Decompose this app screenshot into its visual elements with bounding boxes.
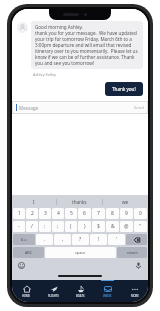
staticText: . (44, 236, 46, 243)
button[interactable]: ABC (13, 247, 44, 258)
staticText: , (62, 236, 64, 243)
button[interactable]: $ (92, 221, 105, 232)
staticText: " (139, 223, 142, 230)
button[interactable]: : (39, 221, 51, 232)
button[interactable]: 6 (78, 208, 91, 219)
staticText: ( (70, 223, 72, 230)
button[interactable]: ; (52, 221, 64, 232)
staticText: 5 (70, 210, 73, 217)
button[interactable]: Dictation (134, 261, 143, 270)
staticText: HOME (22, 294, 31, 298)
staticText: ) (84, 223, 86, 230)
staticText: - (18, 223, 20, 230)
button[interactable]: - (13, 221, 25, 232)
staticText: 6 (83, 210, 86, 217)
staticText: space (75, 250, 86, 255)
staticText: return (127, 250, 138, 255)
staticText: Thank you! (112, 86, 136, 92)
staticText: Message (19, 105, 134, 111)
staticText: ' (116, 236, 118, 243)
button[interactable]: 9 (120, 208, 133, 219)
button[interactable]: thanks (57, 195, 102, 208)
button[interactable]: Backspace (126, 234, 147, 245)
staticText: 9 (125, 210, 128, 217)
button[interactable]: #+= (13, 234, 35, 245)
button[interactable]: & (106, 221, 119, 232)
button[interactable]: 8 (106, 208, 119, 219)
staticText: FLIGHTS (48, 294, 59, 298)
button[interactable]: ! (90, 234, 107, 245)
button[interactable]: Emoji (17, 261, 26, 270)
staticText: ! (98, 236, 100, 243)
staticText: ABC (25, 250, 32, 255)
button[interactable]: 7 (92, 208, 105, 219)
staticText: Send (134, 105, 144, 111)
button[interactable]: Thank you! (105, 82, 143, 96)
staticText: / (31, 223, 33, 230)
button[interactable]: Message (12, 101, 148, 114)
button[interactable]: . (36, 234, 53, 245)
staticText: ? (79, 236, 82, 243)
staticText: $ (97, 223, 100, 230)
staticText: 8 (111, 210, 114, 217)
button[interactable]: FLIGHTS (40, 280, 67, 302)
staticText: Good morning Ashley, thank you for your … (35, 24, 139, 66)
staticText: 2 (31, 210, 34, 217)
staticText: 1 (18, 210, 21, 217)
staticText: I (33, 199, 35, 205)
button[interactable]: 4 (52, 208, 64, 219)
button[interactable]: 1 (13, 208, 25, 219)
staticText: : (44, 223, 46, 230)
button[interactable]: " (134, 221, 147, 232)
button[interactable]: ( (65, 221, 77, 232)
staticText: @ (124, 223, 129, 230)
staticText: ; (57, 223, 59, 230)
button[interactable]: space (45, 247, 116, 258)
button[interactable]: I (12, 195, 56, 208)
button[interactable]: INBOX (94, 280, 121, 302)
button[interactable]: we (103, 195, 148, 208)
staticText: BOATS (76, 294, 85, 298)
staticText: 3 (44, 210, 47, 217)
staticText: INBOX (103, 294, 112, 298)
staticText: #+= (21, 237, 28, 242)
staticText: we (122, 199, 129, 205)
staticText: thanks (72, 199, 87, 205)
button[interactable]: ? (72, 234, 89, 245)
button[interactable]: ' (108, 234, 125, 245)
button[interactable]: 5 (65, 208, 77, 219)
button[interactable]: @ (120, 221, 133, 232)
button[interactable]: , (54, 234, 71, 245)
button[interactable]: return (117, 247, 147, 258)
button[interactable]: 3 (39, 208, 51, 219)
button[interactable]: 2 (26, 208, 38, 219)
staticText: Ashley Kelley (33, 72, 57, 77)
staticText: & (111, 223, 115, 230)
button[interactable]: ) (78, 221, 91, 232)
staticText: MORE (131, 294, 139, 298)
staticText: 0 (139, 210, 142, 217)
button[interactable]: 0 (134, 208, 147, 219)
button[interactable]: / (26, 221, 38, 232)
staticText: 4 (57, 210, 60, 217)
button[interactable]: MORE (121, 280, 148, 302)
button[interactable]: HOME (12, 280, 40, 302)
button[interactable]: BOATS (67, 280, 94, 302)
staticText: 7 (97, 210, 100, 217)
